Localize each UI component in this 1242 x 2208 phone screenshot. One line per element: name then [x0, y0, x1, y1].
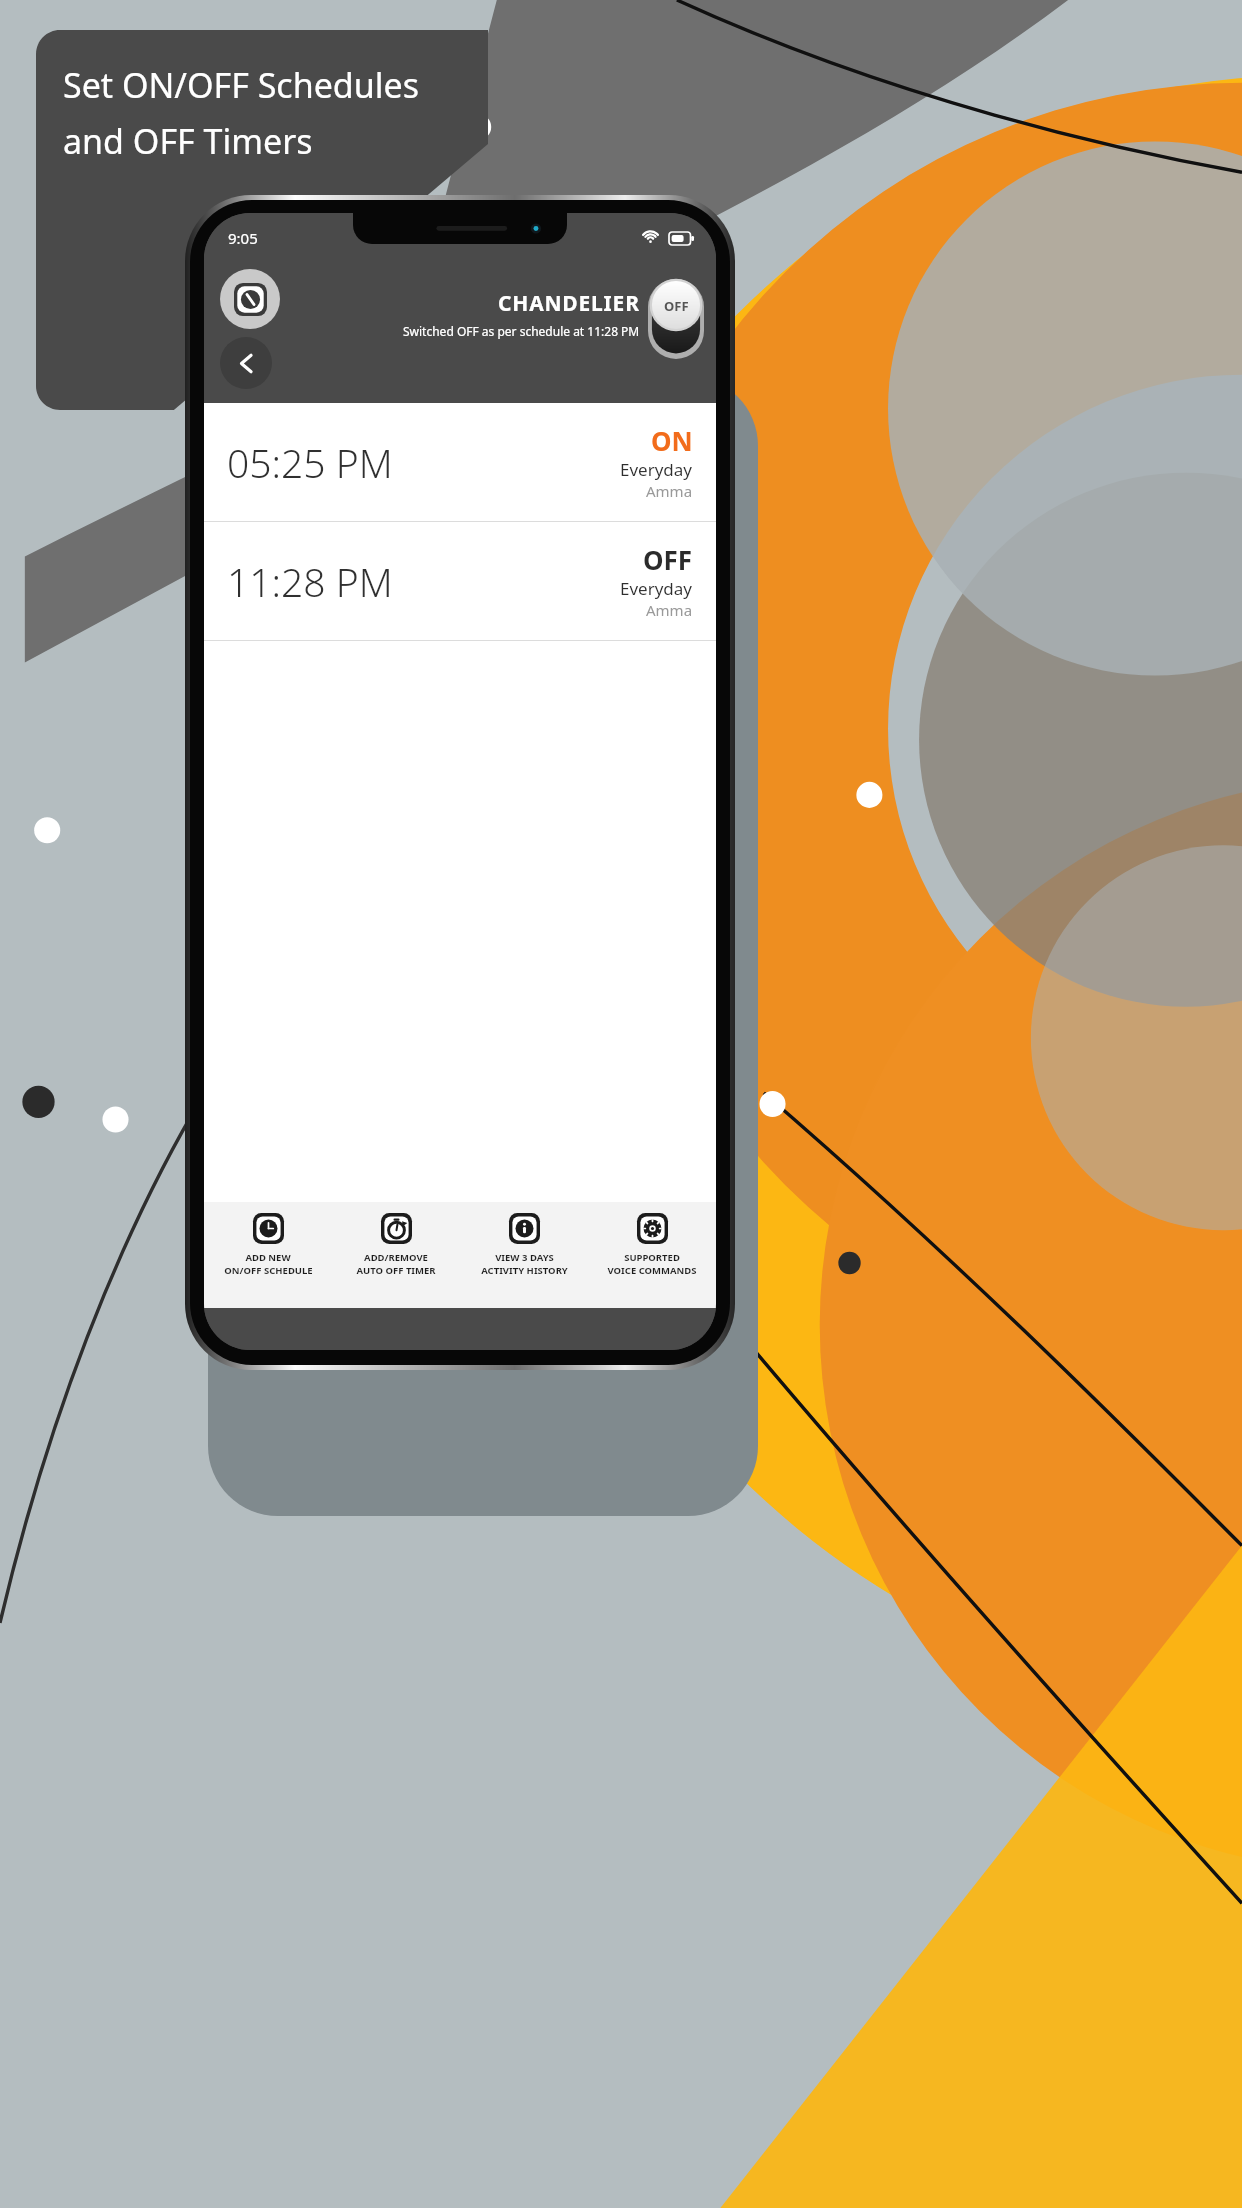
- button[interactable]: Back: [220, 337, 272, 389]
- button[interactable]: ADD NEW: [204, 1202, 332, 1308]
- staticText: Everyday: [620, 458, 693, 481]
- button[interactable]: Power toggle, OFF: [648, 279, 704, 359]
- staticText: ADD/REMOVE: [364, 1251, 428, 1264]
- button[interactable]: VIEW 3 DAYS: [460, 1202, 588, 1308]
- button[interactable]: 05:25 PM: [204, 403, 716, 521]
- staticText: VIEW 3 DAYS: [495, 1251, 554, 1264]
- staticText: OFF: [643, 542, 693, 577]
- button[interactable]: SUPPORTED: [588, 1202, 716, 1308]
- staticText: 9:05: [228, 228, 258, 248]
- staticText: CHANDELIER: [498, 289, 640, 318]
- staticText: Set ON/OFF Schedules: [63, 62, 420, 108]
- staticText: SUPPORTED: [624, 1251, 680, 1264]
- staticText: Amma: [646, 481, 693, 501]
- staticText: ADD NEW: [245, 1251, 291, 1264]
- button[interactable]: ADD/REMOVE: [332, 1202, 460, 1308]
- staticText: Everyday: [620, 577, 693, 600]
- staticText: Amma: [646, 600, 693, 620]
- staticText: ON/OFF SCHEDULE: [224, 1264, 313, 1277]
- button[interactable]: 11:28 PM: [204, 522, 716, 640]
- staticText: ON: [651, 423, 693, 458]
- staticText: 11:28 PM: [227, 555, 393, 608]
- staticText: 05:25 PM: [227, 436, 393, 489]
- button[interactable]: App logo: [220, 269, 280, 329]
- staticText: VOICE COMMANDS: [607, 1264, 697, 1277]
- staticText: Switched OFF as per schedule at 11:28 PM: [403, 323, 640, 339]
- staticText: AUTO OFF TIMER: [356, 1264, 436, 1277]
- staticText: ACTIVITY HISTORY: [481, 1264, 568, 1277]
- staticText: OFF: [664, 297, 689, 315]
- staticText: and OFF Timers: [63, 118, 313, 164]
